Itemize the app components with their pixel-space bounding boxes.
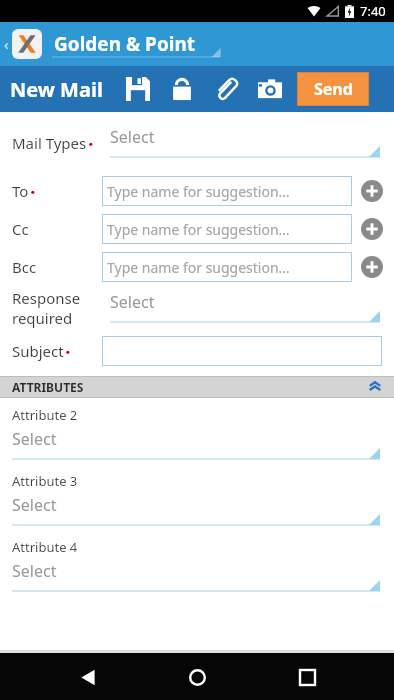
staticText: Type name for suggestion…: [107, 258, 290, 277]
staticText: Attribute 4: [12, 538, 78, 556]
button[interactable]: Attribute 2: [12, 406, 380, 462]
button[interactable]: [102, 336, 382, 366]
button[interactable]: Camera: [253, 72, 287, 106]
button[interactable]: ATTRIBUTES: [0, 376, 394, 398]
staticText: Mail Types: [12, 133, 87, 153]
button[interactable]: Secure: [165, 72, 199, 106]
button[interactable]: Type name for suggestion…: [102, 176, 352, 206]
button[interactable]: Home: [175, 655, 219, 699]
staticText: Subject: [12, 341, 64, 361]
button[interactable]: Mail Types: [12, 126, 380, 160]
staticText: Select: [12, 494, 57, 516]
button[interactable]: ‹: [0, 22, 394, 66]
button[interactable]: Type name for suggestion…: [102, 214, 352, 244]
staticText: 7:40: [360, 2, 386, 20]
staticText: Send: [314, 78, 353, 100]
staticText: required: [12, 308, 73, 328]
staticText: Cc: [12, 219, 29, 239]
button[interactable]: Type name for suggestion…: [102, 252, 352, 282]
button[interactable]: Attribute 4: [12, 538, 380, 594]
staticText: To: [12, 181, 29, 201]
staticText: ATTRIBUTES: [12, 379, 84, 395]
staticText: ‹: [4, 34, 9, 54]
other: Collapse attributes: [366, 378, 384, 396]
staticText: Bcc: [12, 257, 37, 277]
button[interactable]: Add recipient: [360, 179, 384, 203]
button[interactable]: Send: [297, 72, 369, 106]
other: App logo: [12, 29, 42, 59]
staticText: Select: [110, 291, 155, 313]
button[interactable]: Add recipient: [360, 217, 384, 241]
staticText: Response: [12, 288, 81, 308]
button[interactable]: Attribute 3: [12, 472, 380, 528]
staticText: Golden & Point: [54, 31, 196, 57]
button[interactable]: New Mail: [10, 76, 103, 103]
button[interactable]: Add recipient: [360, 255, 384, 279]
button[interactable]: Response: [12, 288, 380, 328]
staticText: Select: [12, 428, 57, 450]
button[interactable]: Back: [66, 655, 110, 699]
button[interactable]: Recents: [285, 655, 329, 699]
staticText: Type name for suggestion…: [107, 182, 290, 201]
staticText: Select: [12, 560, 57, 582]
staticText: Attribute 3: [12, 472, 78, 490]
button[interactable]: Attach: [209, 72, 243, 106]
staticText: Attribute 2: [12, 406, 78, 424]
button[interactable]: Save: [121, 72, 155, 106]
staticText: Select: [110, 126, 155, 148]
staticText: Type name for suggestion…: [107, 220, 290, 239]
